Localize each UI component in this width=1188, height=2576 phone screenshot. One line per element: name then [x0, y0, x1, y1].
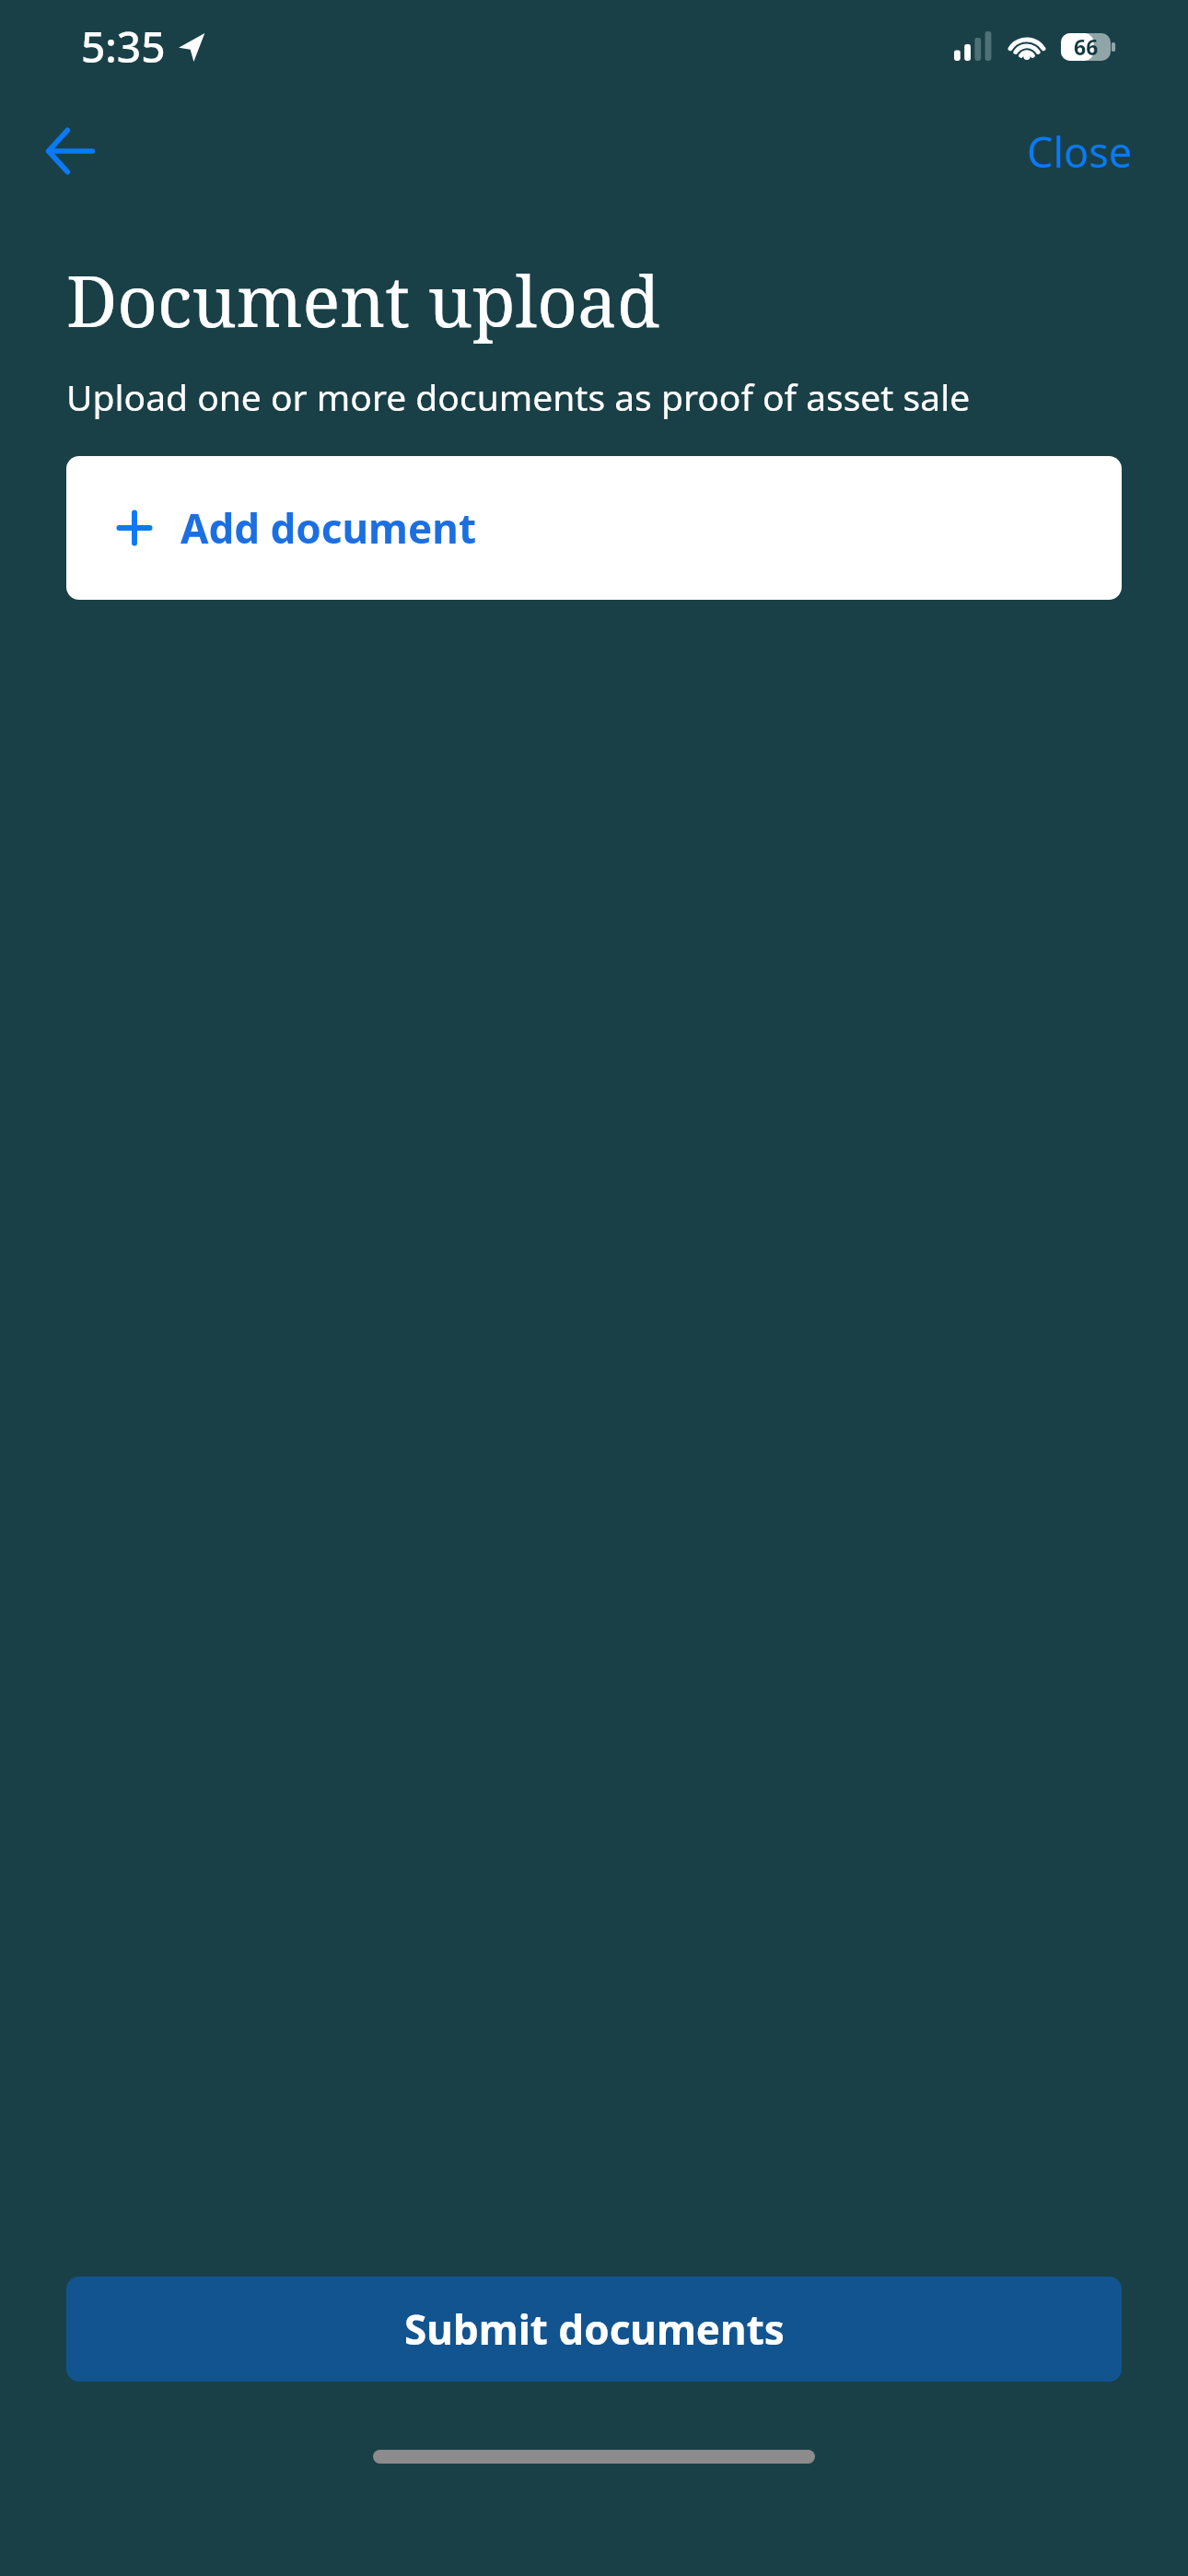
button[interactable]: Back: [26, 107, 114, 195]
staticText: Upload one or more documents as proof of…: [66, 372, 971, 421]
button[interactable]: Close: [1014, 112, 1146, 191]
staticText: 66: [1074, 32, 1099, 61]
button[interactable]: Submit documents: [66, 2277, 1122, 2382]
staticText: Submit documents: [404, 2301, 785, 2357]
staticText: 5:35: [81, 18, 166, 76]
staticText: Document upload: [66, 252, 660, 348]
staticText: Close: [1027, 123, 1133, 180]
staticText: Add document: [181, 500, 476, 556]
button[interactable]: Add document: [66, 456, 1122, 600]
